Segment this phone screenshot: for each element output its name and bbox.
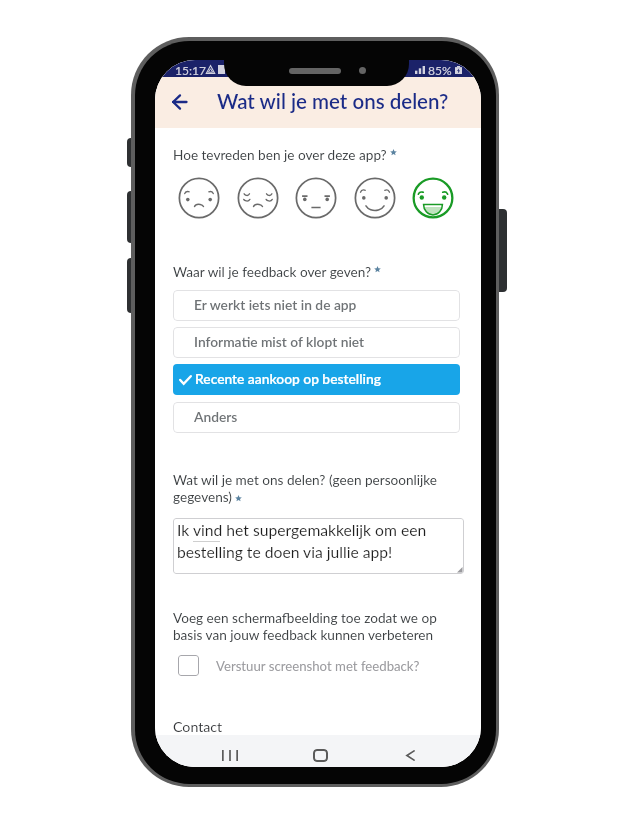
button[interactable]: Ik vind het supergemakkelijk om een best… xyxy=(173,518,464,574)
button[interactable]: Terug xyxy=(161,89,197,115)
button[interactable]: Recente apps xyxy=(214,742,246,767)
staticText: Hoe tevreden ben je over deze app? xyxy=(173,147,387,163)
button[interactable]: Er werkt iets niet in de app xyxy=(173,290,460,321)
staticText: Verstuur screenshot met feedback? xyxy=(216,658,420,674)
button[interactable]: Ontevreden xyxy=(236,176,280,220)
staticText: Er werkt iets niet in de app xyxy=(194,296,357,313)
button[interactable]: Anders xyxy=(173,402,460,433)
staticText: 15:17 xyxy=(175,63,207,78)
staticText: Ik vind het supergemakkelijk om een best… xyxy=(177,521,427,561)
button[interactable]: Terug xyxy=(394,742,426,767)
button[interactable]: Recente aankoop op bestelling xyxy=(173,364,460,395)
staticText: Voeg een schermafbeelding toe zodat we o… xyxy=(173,610,437,643)
button[interactable]: Neutraal xyxy=(294,176,338,220)
staticText: Anders xyxy=(194,408,238,425)
staticText: Informatie mist of klopt niet xyxy=(194,333,365,350)
staticText: Contact xyxy=(173,718,223,735)
button[interactable]: Zeer tevreden xyxy=(411,176,455,220)
staticText: Waar wil je feedback over geven? xyxy=(173,264,371,280)
button[interactable]: Tevreden xyxy=(353,176,397,220)
button[interactable]: Informatie mist of klopt niet xyxy=(173,327,460,358)
staticText: Wat wil je met ons delen? xyxy=(217,89,449,114)
staticText: Wat wil je met ons delen? (geen persoonl… xyxy=(173,472,437,505)
button[interactable]: Home xyxy=(304,742,336,767)
staticText: 85% xyxy=(428,63,452,78)
staticText: Recente aankoop op bestelling xyxy=(195,370,381,387)
button[interactable]: Verstuur screenshot met feedback? xyxy=(178,655,420,676)
button[interactable]: Zeer ontevreden xyxy=(177,176,221,220)
